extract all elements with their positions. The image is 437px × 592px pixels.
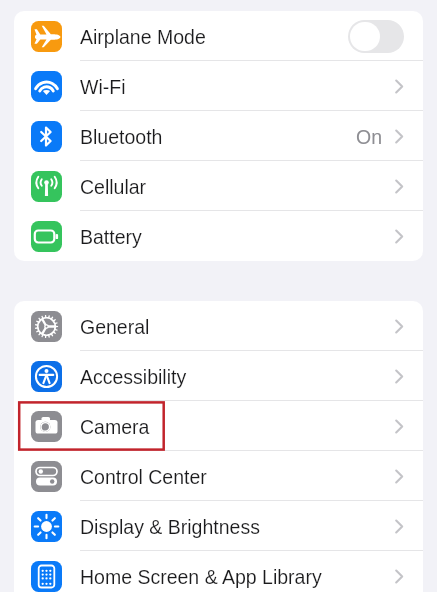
staticText: Battery	[80, 226, 142, 248]
other: Open	[394, 79, 404, 94]
staticText: Accessibility	[80, 366, 187, 388]
staticText: Bluetooth	[80, 126, 163, 148]
other: Open	[394, 179, 404, 194]
staticText: On	[356, 126, 383, 148]
staticText: Airplane Mode	[80, 26, 206, 48]
button[interactable]: Cellular	[14, 161, 423, 211]
other: Open	[394, 519, 404, 534]
button[interactable]: Accessibility	[14, 351, 423, 401]
other: Open	[394, 469, 404, 484]
other: Open	[394, 369, 404, 384]
button[interactable]: Airplane Mode	[14, 11, 423, 61]
button[interactable]: General	[14, 301, 423, 351]
button[interactable]: Display & Brightness	[14, 501, 423, 551]
staticText: Display & Brightness	[80, 516, 260, 538]
staticText: Home Screen & App Library	[80, 566, 322, 588]
button[interactable]: Bluetooth	[14, 111, 423, 161]
other: Open	[394, 419, 404, 434]
staticText: General	[80, 316, 150, 338]
staticText: Control Center	[80, 466, 207, 488]
other: Open	[394, 229, 404, 244]
button[interactable]: Home Screen & App Library	[14, 551, 423, 592]
other: Open	[394, 129, 404, 144]
button[interactable]: Camera	[14, 401, 423, 451]
staticText: Cellular	[80, 176, 147, 198]
button[interactable]: Airplane Mode switch	[348, 20, 404, 53]
other: Open	[394, 569, 404, 584]
other: Open	[394, 319, 404, 334]
staticText: Wi-Fi	[80, 76, 126, 98]
button[interactable]: Control Center	[14, 451, 423, 501]
button[interactable]: Wi-Fi	[14, 61, 423, 111]
button[interactable]: Battery	[14, 211, 423, 261]
staticText: Camera	[80, 416, 150, 438]
